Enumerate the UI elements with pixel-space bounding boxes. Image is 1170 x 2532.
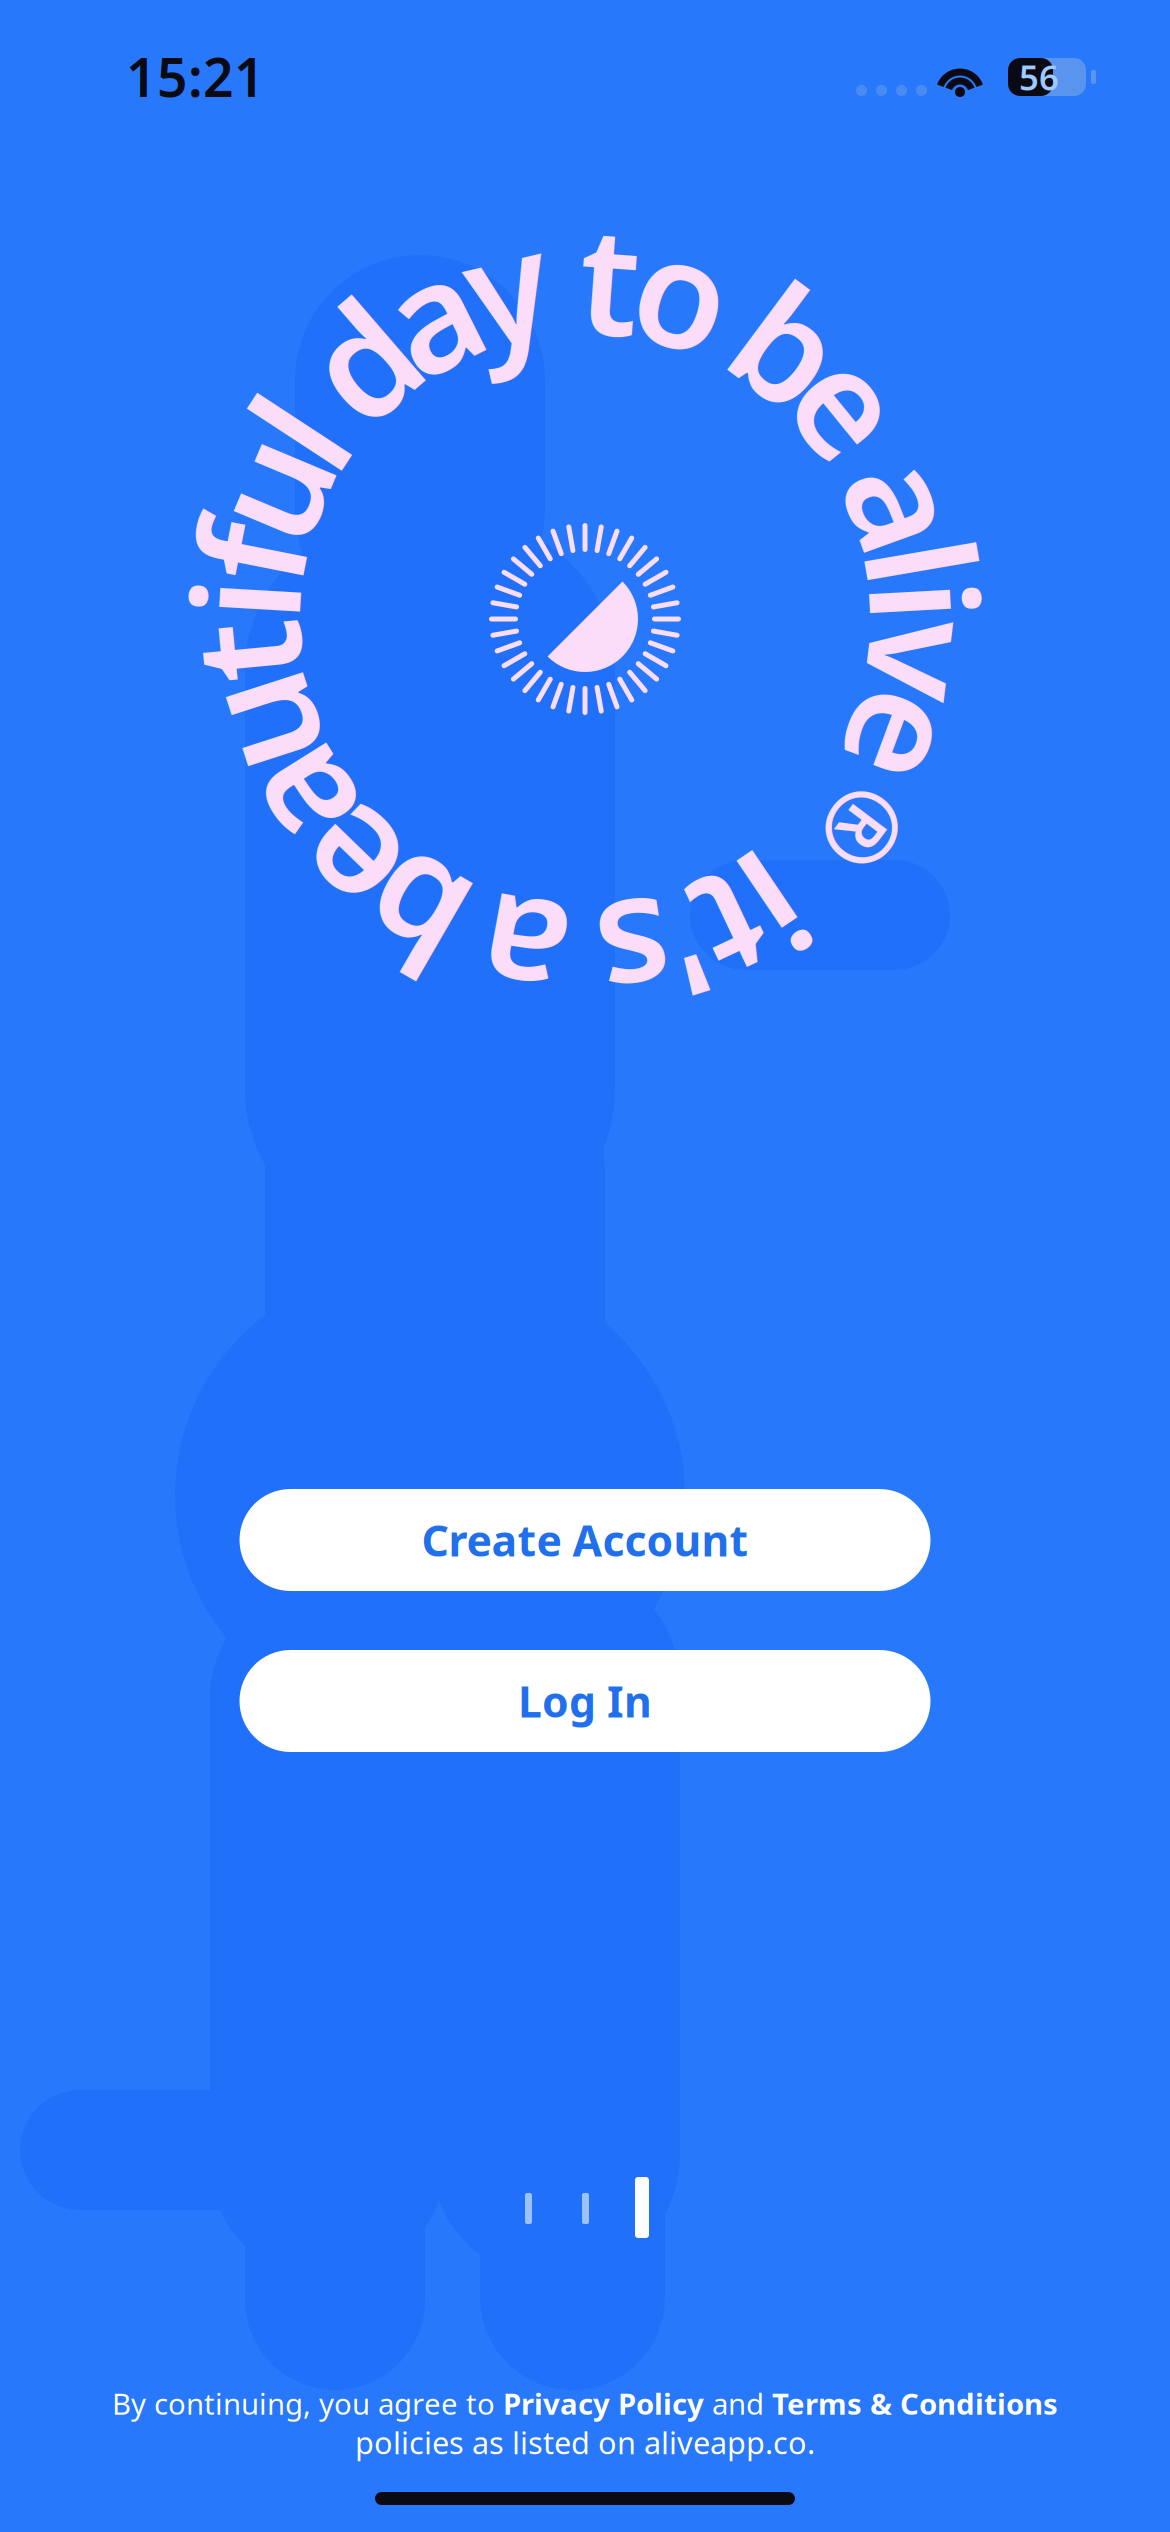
staticText: i bbox=[564, 177, 606, 375]
staticText: a bbox=[541, 177, 628, 375]
staticText: t bbox=[554, 177, 615, 375]
staticText bbox=[565, 177, 604, 375]
staticText bbox=[565, 177, 604, 375]
staticText: b bbox=[538, 177, 631, 375]
staticText bbox=[565, 177, 604, 375]
staticText: e bbox=[541, 177, 628, 375]
staticText bbox=[565, 177, 604, 375]
staticText: l bbox=[564, 177, 606, 375]
staticText: e bbox=[541, 177, 628, 375]
staticText: o bbox=[539, 177, 631, 375]
staticText: 15:21 bbox=[126, 41, 265, 112]
button[interactable]: Create Account bbox=[239, 1489, 930, 1591]
staticText: Log In bbox=[518, 1673, 652, 1729]
staticText: f bbox=[557, 177, 612, 375]
staticText: v bbox=[544, 177, 626, 375]
staticText: b bbox=[538, 177, 631, 375]
staticText: By continuing, you agree to Privacy Poli… bbox=[112, 2384, 1058, 2423]
staticText: t bbox=[554, 177, 615, 375]
staticText: t bbox=[554, 177, 615, 375]
staticText: Create Account bbox=[421, 1512, 748, 1568]
staticText: s bbox=[548, 177, 622, 375]
staticText bbox=[565, 177, 604, 375]
staticText: ' bbox=[566, 177, 603, 375]
staticText bbox=[565, 177, 604, 375]
staticText: l bbox=[564, 177, 606, 375]
staticText: u bbox=[537, 177, 632, 375]
staticText: u bbox=[537, 177, 632, 375]
staticText: 56 bbox=[1019, 54, 1059, 100]
staticText: y bbox=[544, 177, 626, 375]
staticText: d bbox=[538, 177, 631, 375]
staticText: a bbox=[541, 177, 628, 375]
staticText: ® bbox=[544, 205, 625, 334]
staticText: i bbox=[564, 177, 606, 375]
staticText: a bbox=[541, 177, 628, 375]
staticText: e bbox=[541, 177, 628, 375]
staticText: policies as listed on aliveapp.co. bbox=[355, 2422, 815, 2463]
button[interactable]: Log In bbox=[239, 1650, 930, 1752]
staticText: a bbox=[541, 177, 628, 375]
staticText: i bbox=[564, 177, 606, 375]
